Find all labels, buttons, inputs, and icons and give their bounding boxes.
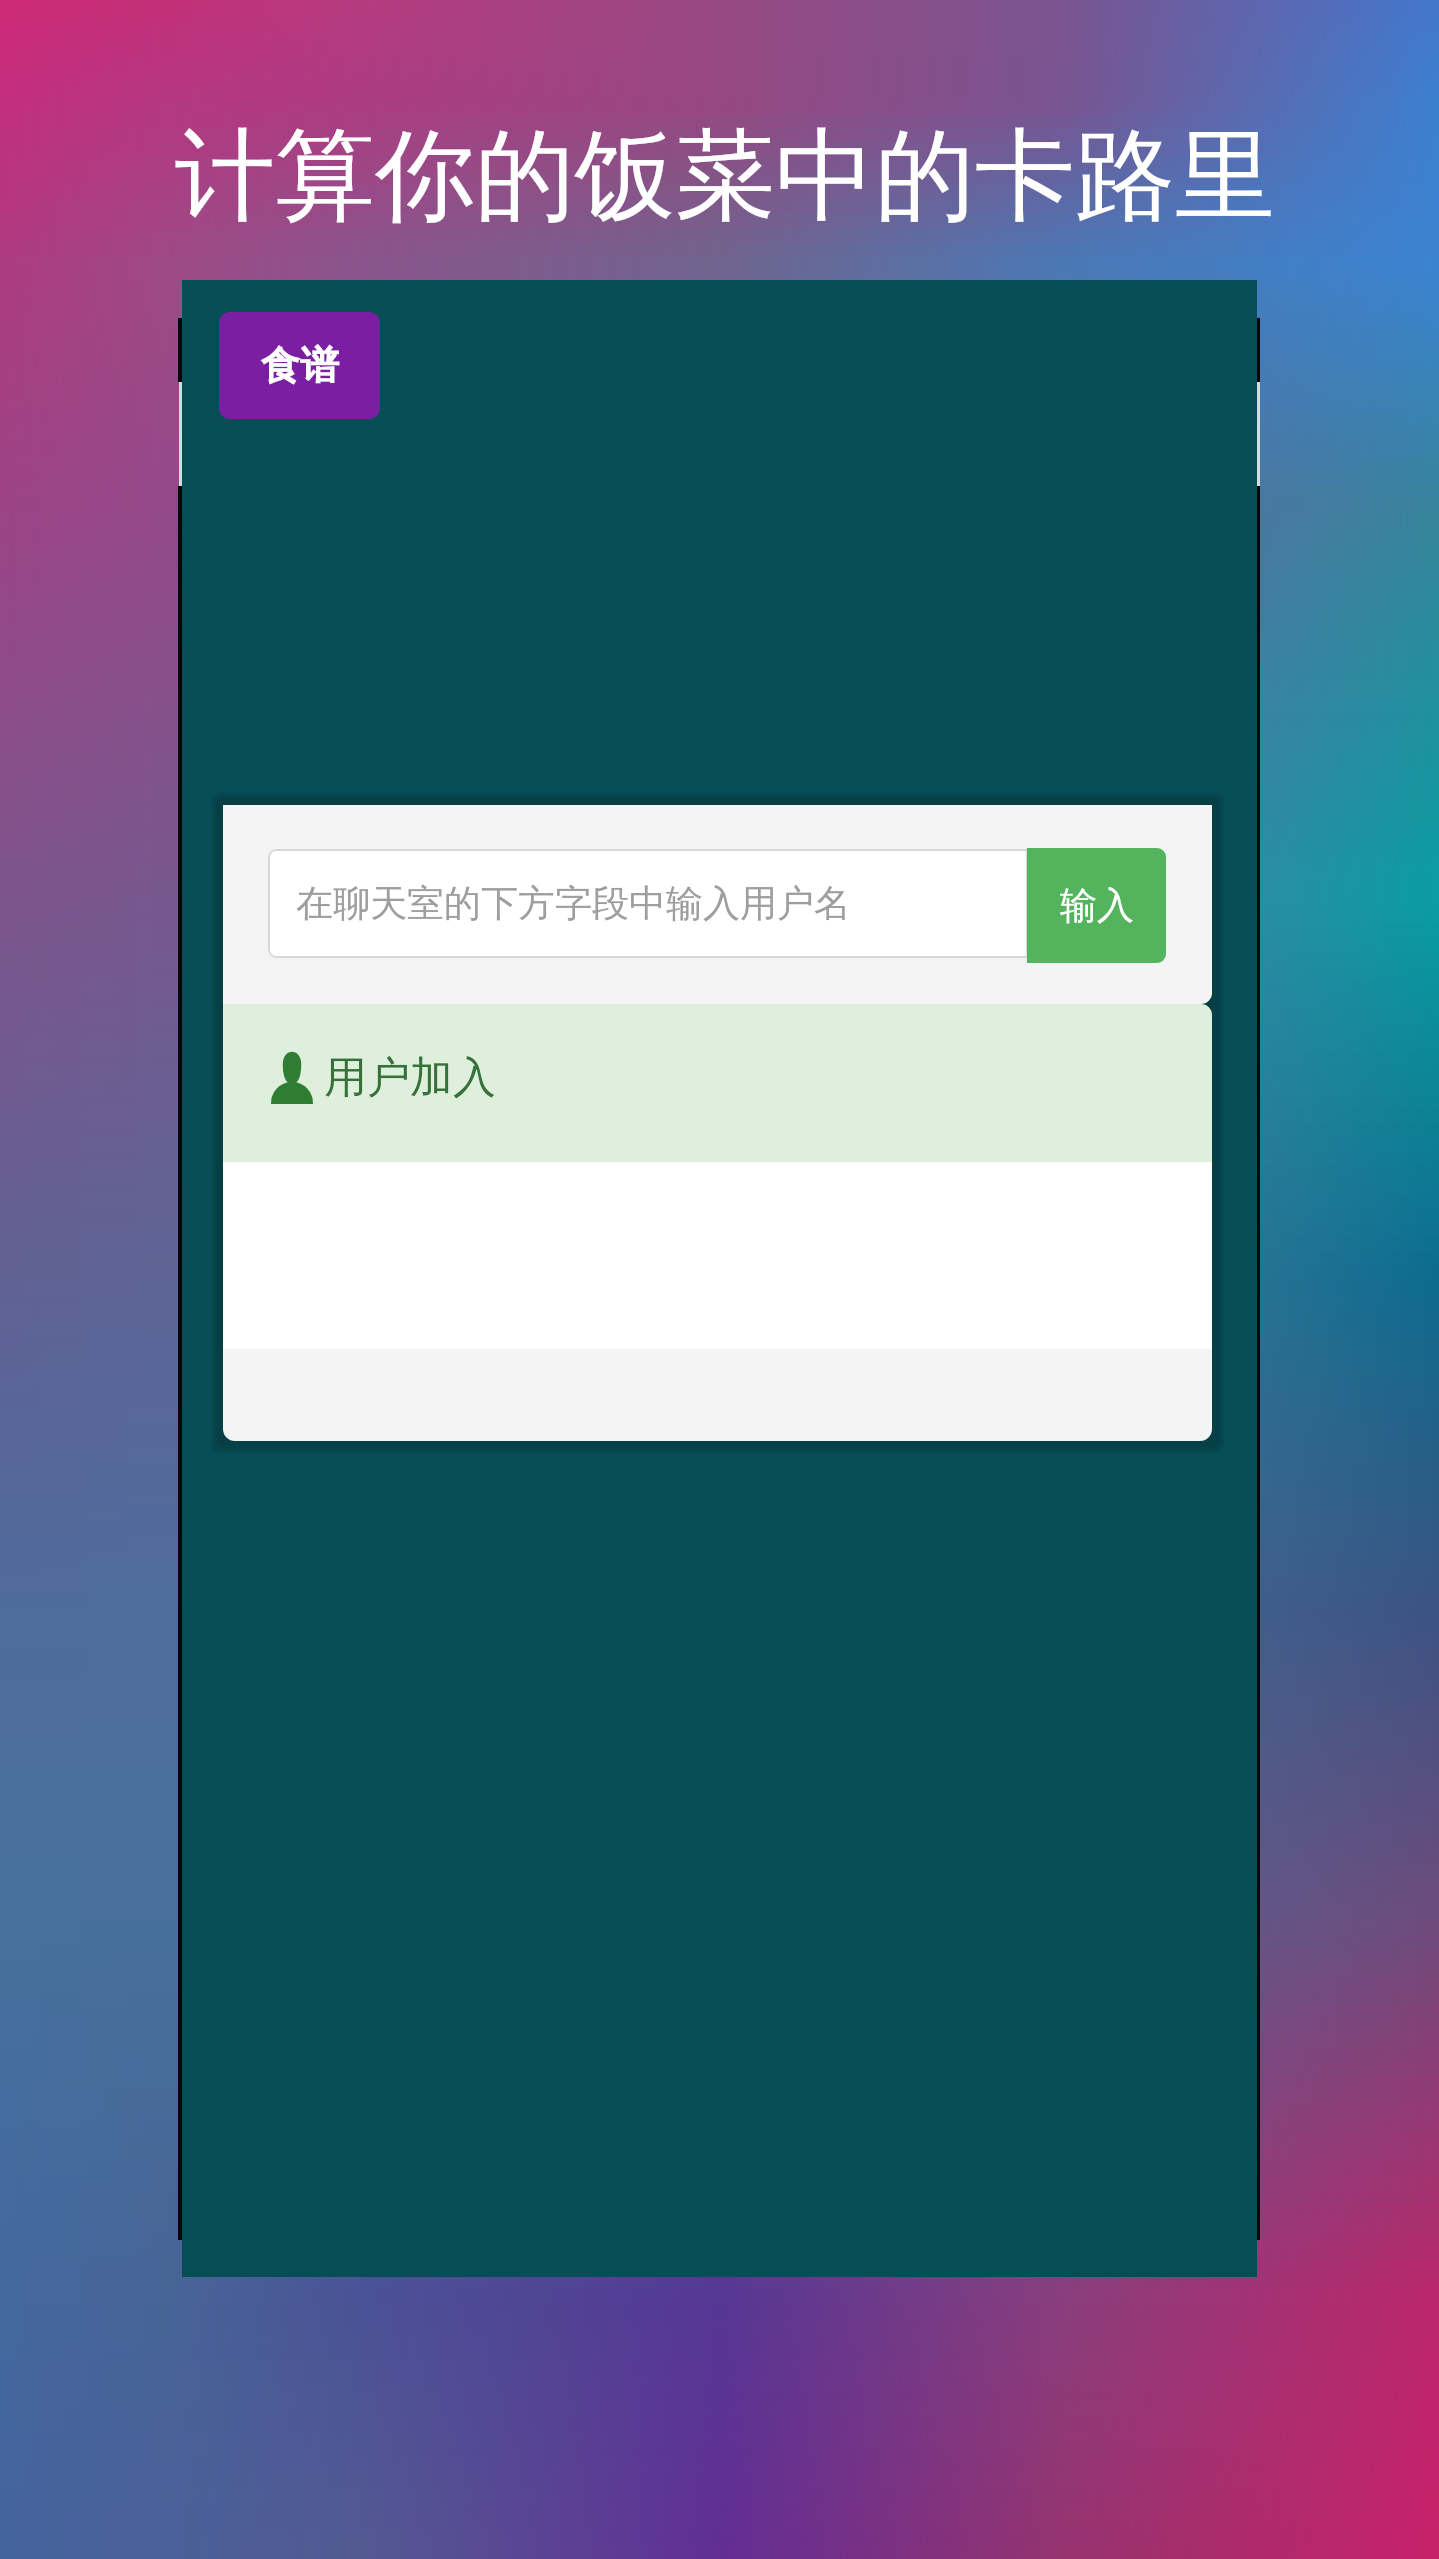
staticText: 食谱 — [261, 341, 339, 390]
staticText: 输入 — [1060, 882, 1134, 929]
other: User — [271, 1044, 313, 1104]
staticText: 用户加入 — [324, 1051, 496, 1105]
staticText: 计算你的饭菜中的卡路里 — [175, 114, 1275, 240]
button[interactable]: User — [223, 1004, 1212, 1162]
button[interactable]: 食谱 — [219, 312, 380, 419]
staticText: 在聊天室的下方字段中输入用户名 — [296, 880, 851, 927]
button[interactable]: 在聊天室的下方字段中输入用户名 — [268, 849, 1028, 958]
button[interactable]: 输入 — [1027, 848, 1166, 963]
